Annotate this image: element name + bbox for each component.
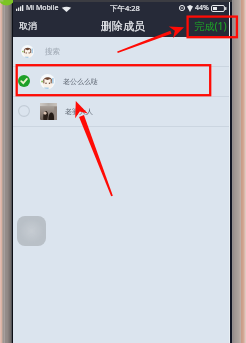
button[interactable]: 完成(1) xyxy=(192,16,229,36)
staticText: Mi Mobile xyxy=(26,3,59,13)
button[interactable]: 取消 xyxy=(13,18,43,35)
button[interactable]: 搜索 xyxy=(13,37,229,66)
staticText: 搜索 xyxy=(45,47,60,56)
staticText: 下午4:28 xyxy=(110,3,140,13)
staticText: 取消 xyxy=(19,21,37,32)
staticText: 删除成员 xyxy=(101,19,145,33)
staticText: 老婆大人 xyxy=(65,107,93,116)
staticText: 老公么么哒 xyxy=(63,77,98,86)
button[interactable]: 老婆大人 xyxy=(13,97,229,126)
button[interactable]: Assistive touch xyxy=(17,216,46,246)
staticText: 完成(1) xyxy=(194,19,227,33)
staticText: 44% xyxy=(195,3,209,13)
button[interactable]: 老公么么哒 xyxy=(13,67,229,96)
